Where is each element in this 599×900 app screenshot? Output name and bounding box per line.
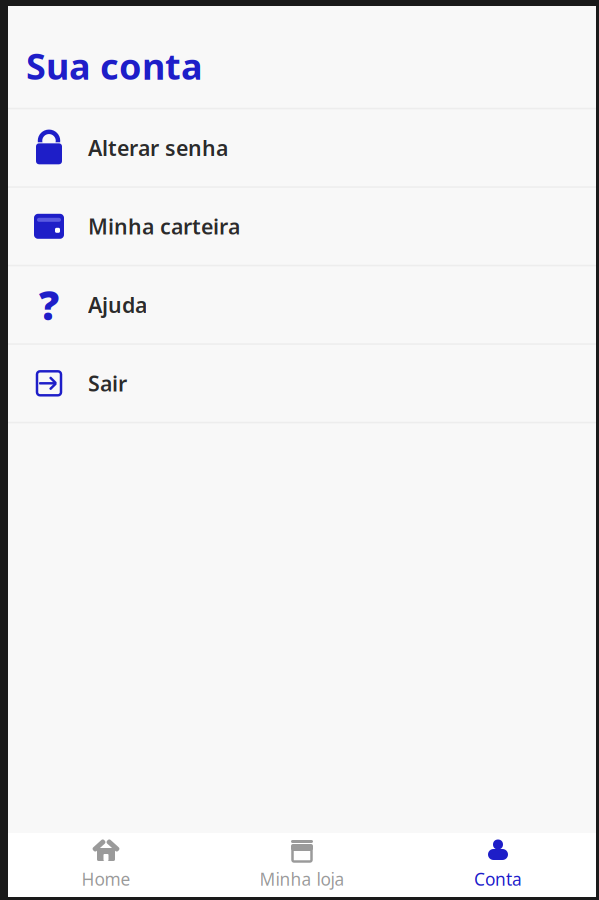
staticText: ?	[39, 278, 59, 331]
staticText: Ajuda	[88, 291, 147, 319]
button[interactable]: Alterar senha	[8, 109, 596, 188]
staticText: Minha carteira	[88, 212, 240, 240]
button[interactable]: Sair	[8, 345, 596, 423]
staticText: Minha loja	[259, 867, 344, 890]
staticText: Alterar senha	[88, 134, 228, 162]
button[interactable]: Minha loja	[204, 827, 400, 900]
button[interactable]: ?	[8, 266, 596, 345]
staticText: Sua conta	[26, 42, 203, 90]
staticText: Home	[81, 867, 130, 890]
button[interactable]: Minha carteira	[8, 188, 596, 266]
staticText: Conta	[474, 867, 522, 890]
staticText: Sair	[88, 369, 127, 397]
button[interactable]: Conta	[400, 827, 596, 900]
button[interactable]: Home	[8, 827, 204, 900]
